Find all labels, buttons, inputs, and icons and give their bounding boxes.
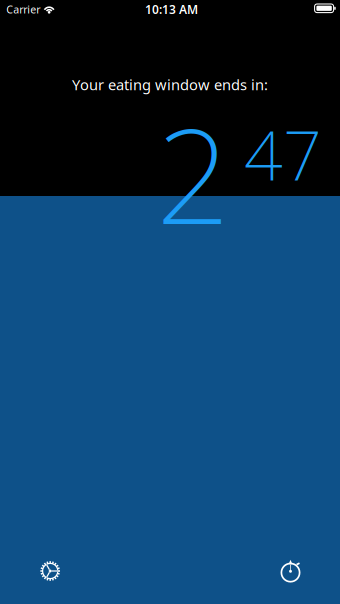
staticText: Your eating window ends in: xyxy=(72,75,268,94)
staticText: 2 xyxy=(156,86,230,260)
staticText: Carrier xyxy=(6,2,40,16)
staticText: 10:13 AM xyxy=(145,1,198,17)
button[interactable]: Timer xyxy=(268,549,312,593)
staticText: 47 xyxy=(244,109,322,199)
button[interactable]: Settings xyxy=(28,549,72,593)
